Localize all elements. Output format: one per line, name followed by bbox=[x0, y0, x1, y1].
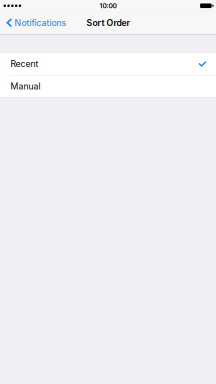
button[interactable]: Recent bbox=[0, 53, 216, 75]
button[interactable]: Back to Notifications bbox=[0, 13, 71, 32]
staticText: 10:00 bbox=[99, 2, 116, 10]
button[interactable]: Manual bbox=[0, 75, 216, 97]
staticText: Manual bbox=[10, 81, 40, 92]
staticText: Recent bbox=[10, 59, 38, 69]
staticText: Sort Order bbox=[86, 17, 129, 28]
staticText: Notifications bbox=[15, 17, 67, 28]
